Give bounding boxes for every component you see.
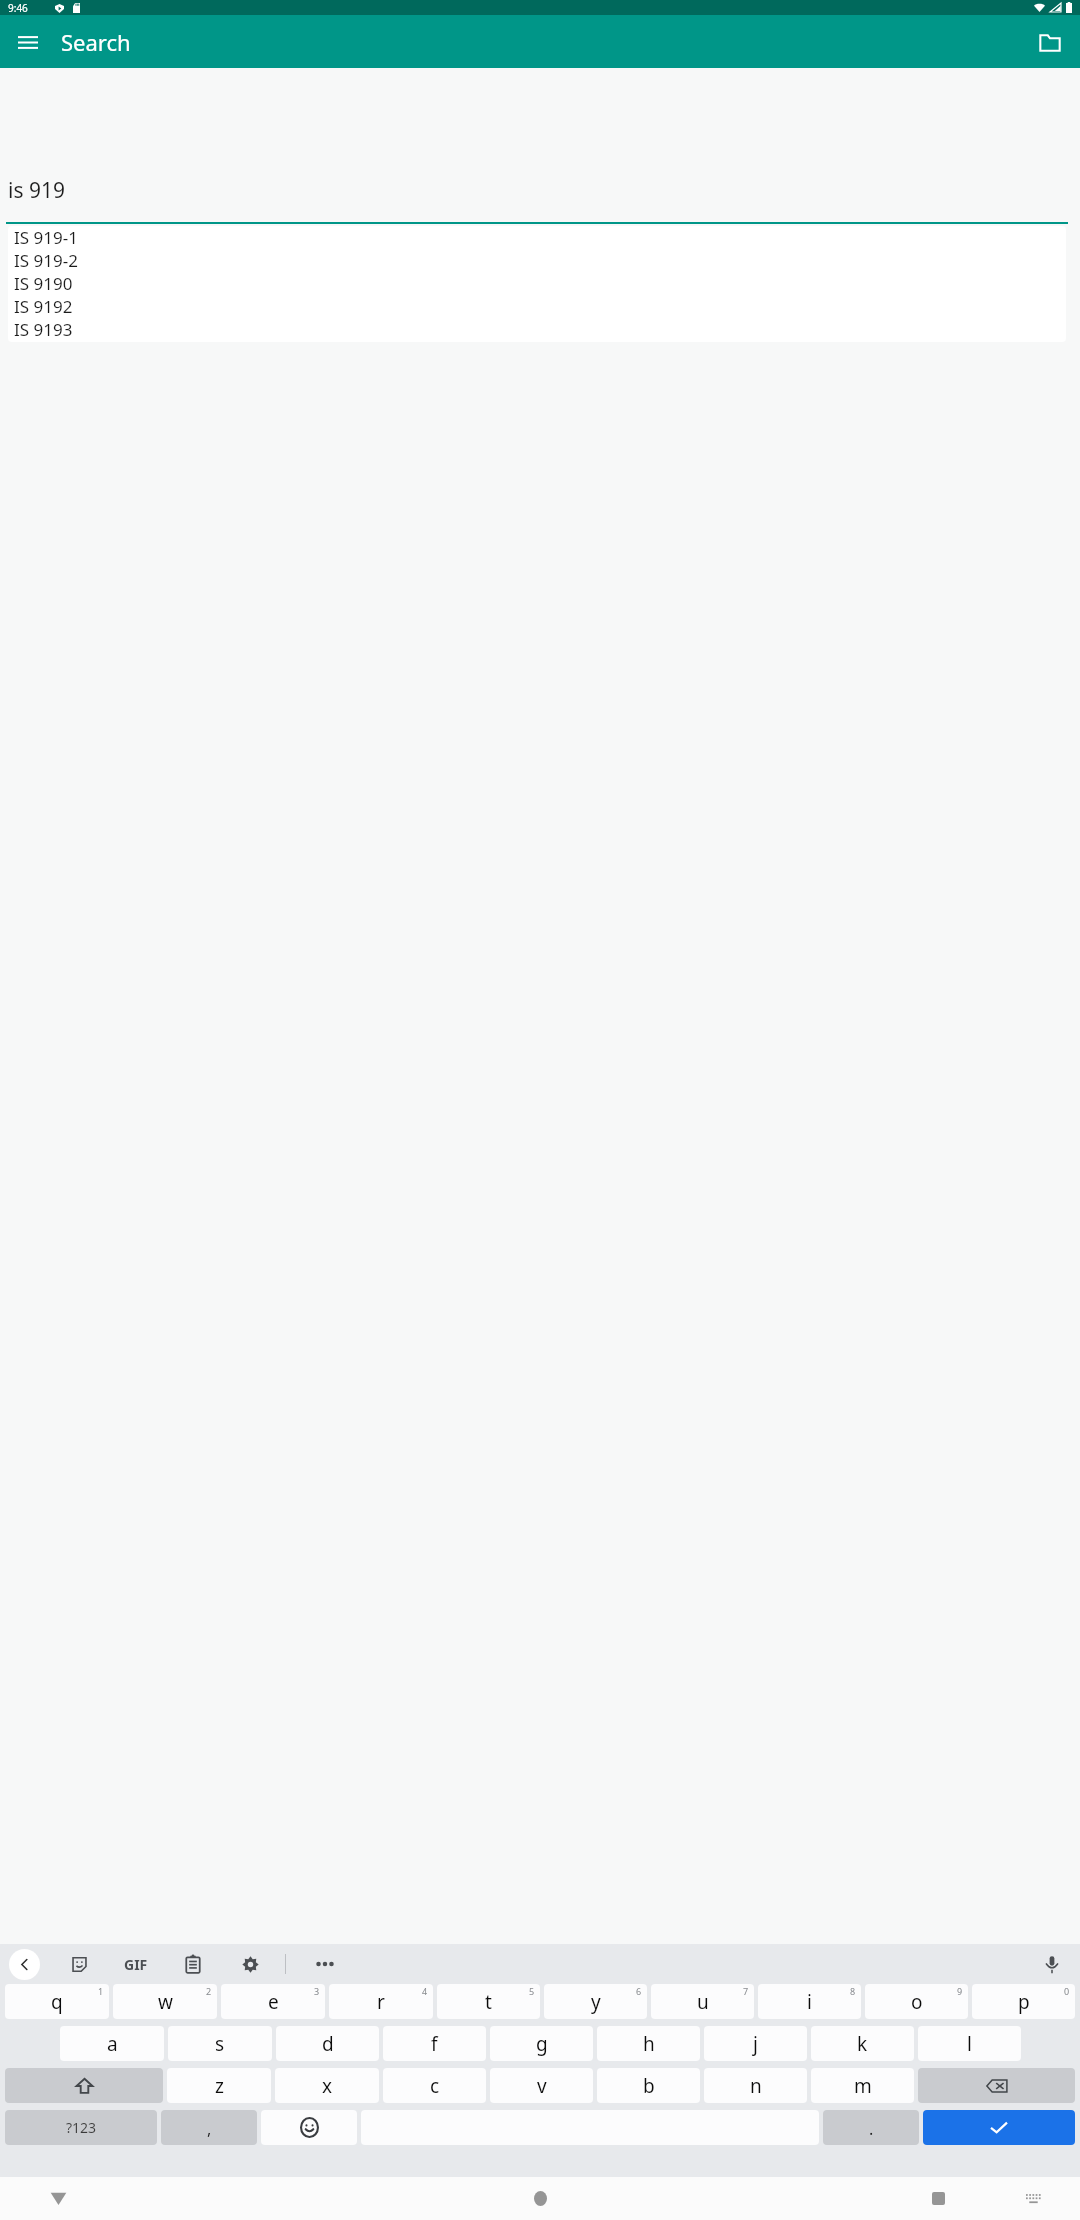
staticText: . bbox=[869, 2118, 874, 2140]
staticText: d bbox=[322, 2031, 334, 2057]
button[interactable]: p bbox=[972, 1984, 1075, 2019]
staticText: 6 bbox=[636, 1985, 642, 1997]
button[interactable]: Stickers bbox=[61, 1946, 97, 1982]
staticText: 9 bbox=[957, 1985, 963, 1997]
button[interactable]: q bbox=[5, 1984, 109, 2019]
staticText: IS 9193 bbox=[14, 318, 73, 341]
staticText: r bbox=[377, 1989, 385, 2015]
staticText: k bbox=[857, 2031, 868, 2057]
button[interactable]: w bbox=[113, 1984, 217, 2019]
staticText: IS 9192 bbox=[14, 295, 73, 318]
staticText: v bbox=[537, 2073, 547, 2099]
staticText: 8 bbox=[850, 1985, 856, 1997]
button[interactable]: h bbox=[597, 2026, 700, 2061]
staticText: q bbox=[51, 1989, 63, 2015]
button[interactable]: g bbox=[490, 2026, 593, 2061]
button[interactable]: s bbox=[168, 2026, 272, 2061]
staticText: s bbox=[215, 2031, 225, 2057]
button[interactable]: i bbox=[758, 1984, 861, 2019]
button[interactable]: . bbox=[823, 2110, 919, 2145]
staticText: e bbox=[268, 1989, 279, 2015]
staticText: n bbox=[750, 2073, 762, 2099]
staticText: l bbox=[967, 2031, 972, 2057]
staticText: , bbox=[207, 2118, 212, 2140]
button[interactable]: , bbox=[161, 2110, 257, 2145]
staticText: IS 9190 bbox=[14, 272, 73, 295]
button[interactable]: e bbox=[221, 1984, 325, 2019]
staticText: IS 919-2 bbox=[14, 249, 78, 272]
button[interactable]: b bbox=[597, 2068, 700, 2103]
staticText: h bbox=[643, 2031, 655, 2057]
button[interactable]: c bbox=[383, 2068, 486, 2103]
button[interactable]: Backspace bbox=[918, 2068, 1075, 2103]
staticText: w bbox=[158, 1989, 173, 2015]
button[interactable]: IS 919-1 bbox=[8, 226, 1066, 249]
button[interactable]: IS 9193 bbox=[8, 318, 1066, 341]
button[interactable]: o bbox=[865, 1984, 968, 2019]
staticText: IS 919-1 bbox=[14, 226, 78, 249]
button[interactable]: Back bbox=[9, 1949, 40, 1980]
staticText: 9:46 bbox=[8, 1, 28, 15]
button[interactable]: j bbox=[704, 2026, 807, 2061]
button[interactable]: Back bbox=[36, 2177, 80, 2220]
button[interactable]: Browse folders bbox=[1028, 20, 1072, 64]
button[interactable]: v bbox=[490, 2068, 593, 2103]
button[interactable]: Open navigation menu bbox=[6, 20, 50, 64]
staticText: 4 bbox=[422, 1985, 428, 1997]
staticText: 2 bbox=[206, 1985, 212, 1997]
button[interactable]: GIF bbox=[118, 1946, 154, 1982]
button[interactable]: z bbox=[167, 2068, 271, 2103]
staticText: x bbox=[322, 2073, 333, 2099]
button[interactable]: f bbox=[383, 2026, 486, 2061]
button[interactable]: Voice input bbox=[1034, 1946, 1070, 1982]
staticText: o bbox=[911, 1989, 923, 2015]
staticText: g bbox=[536, 2031, 548, 2057]
staticText: 5 bbox=[529, 1985, 535, 1997]
button[interactable]: Home bbox=[518, 2177, 562, 2220]
staticText: c bbox=[430, 2073, 440, 2099]
staticText: m bbox=[854, 2073, 872, 2099]
staticText: t bbox=[485, 1989, 492, 2015]
button[interactable]: Shift bbox=[5, 2068, 163, 2103]
button[interactable]: ?123 bbox=[5, 2110, 157, 2145]
button[interactable]: d bbox=[276, 2026, 379, 2061]
button[interactable]: Settings bbox=[232, 1946, 268, 1982]
staticText: GIF bbox=[124, 1955, 148, 1974]
staticText: Search bbox=[61, 27, 131, 57]
button[interactable]: u bbox=[651, 1984, 754, 2019]
button[interactable]: m bbox=[811, 2068, 914, 2103]
staticText: i bbox=[807, 1989, 812, 2015]
button[interactable]: a bbox=[60, 2026, 164, 2061]
button[interactable]: n bbox=[704, 2068, 807, 2103]
button[interactable]: IS 919-2 bbox=[8, 249, 1066, 272]
button[interactable]: t bbox=[437, 1984, 540, 2019]
button[interactable]: IS 9192 bbox=[8, 295, 1066, 318]
button[interactable]: IS 9190 bbox=[8, 272, 1066, 295]
staticText: p bbox=[1018, 1989, 1030, 2015]
staticText: is 919 bbox=[8, 176, 65, 205]
staticText: z bbox=[215, 2073, 224, 2099]
staticText: ?123 bbox=[66, 2118, 97, 2137]
staticText: a bbox=[107, 2031, 118, 2057]
button[interactable]: More options bbox=[307, 1946, 343, 1982]
button[interactable]: Clipboard bbox=[175, 1946, 211, 1982]
staticText: b bbox=[643, 2073, 655, 2099]
button[interactable]: y bbox=[544, 1984, 647, 2019]
staticText: 7 bbox=[743, 1985, 749, 1997]
staticText: f bbox=[431, 2031, 438, 2057]
button[interactable]: Enter bbox=[923, 2110, 1075, 2145]
staticText: 0 bbox=[1064, 1985, 1070, 1997]
staticText: u bbox=[697, 1989, 709, 2015]
staticText: 1 bbox=[98, 1985, 104, 1997]
button[interactable]: Recent apps bbox=[916, 2177, 960, 2220]
button[interactable]: k bbox=[811, 2026, 914, 2061]
staticText: y bbox=[591, 1989, 601, 2015]
button[interactable]: Emoji bbox=[261, 2110, 357, 2145]
button[interactable]: r bbox=[329, 1984, 433, 2019]
staticText: j bbox=[753, 2031, 758, 2057]
button[interactable]: x bbox=[275, 2068, 379, 2103]
staticText: 3 bbox=[314, 1985, 320, 1997]
button[interactable]: l bbox=[918, 2026, 1021, 2061]
button[interactable]: Switch keyboard bbox=[1011, 2177, 1055, 2220]
